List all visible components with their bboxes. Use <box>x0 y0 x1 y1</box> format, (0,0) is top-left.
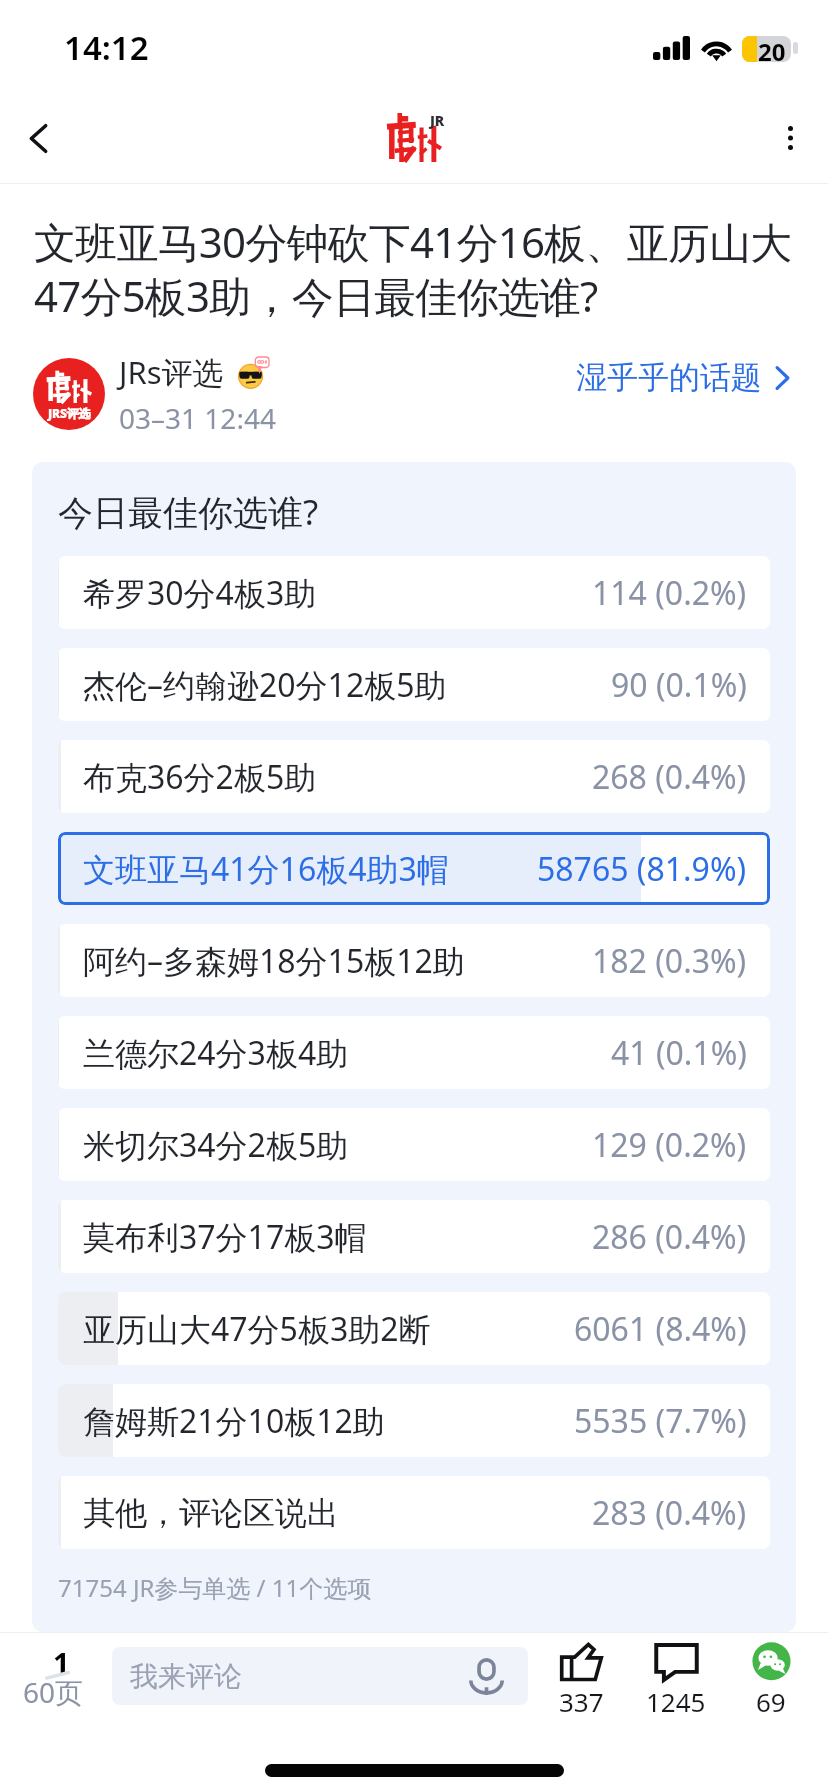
staticText: 米切尔34分2板5助 <box>83 1123 349 1167</box>
staticText: 1 <box>53 1643 70 1682</box>
button[interactable]: 兰德尔24分3板4助 <box>58 1016 770 1089</box>
button[interactable]: 杰伦–约翰逊20分12板5助 <box>58 648 770 721</box>
staticText: 20 <box>758 35 786 61</box>
staticText: 莫布利37分17板3帽 <box>83 1215 367 1259</box>
staticText: 1245 <box>646 1684 706 1719</box>
button[interactable]: 文班亚马41分16板4助3帽 <box>58 832 770 905</box>
staticText: 今日最佳你选谁? <box>58 488 319 536</box>
staticText: 58765 (81.9%) <box>537 847 747 891</box>
staticText: 14:12 <box>64 25 149 70</box>
button[interactable]: 詹姆斯21分10板12助 <box>58 1384 770 1457</box>
staticText: 286 (0.4%) <box>592 1215 747 1259</box>
staticText: 杰伦–约翰逊20分12板5助 <box>83 663 447 707</box>
button[interactable]: 布克36分2板5助 <box>58 740 770 813</box>
button[interactable]: Share to WeChat <box>725 1643 817 1719</box>
staticText: 6061 (8.4%) <box>574 1307 747 1351</box>
staticText: 文班亚马30分钟砍下41分16板、亚历山大47分5板3助，今日最佳你选谁? <box>34 213 796 324</box>
staticText: 283 (0.4%) <box>592 1491 747 1535</box>
button[interactable]: Comments <box>630 1643 722 1719</box>
button[interactable]: 希罗30分4板3助 <box>58 556 770 629</box>
button[interactable]: Like <box>535 1643 627 1719</box>
staticText: 亚历山大47分5板3助2断 <box>83 1307 431 1351</box>
staticText: 129 (0.2%) <box>592 1123 747 1167</box>
button[interactable]: 1 <box>13 1641 97 1711</box>
staticText: 69 <box>756 1684 786 1719</box>
button[interactable]: 湿乎乎的话题 <box>576 358 790 397</box>
staticText: 114 (0.2%) <box>592 571 747 615</box>
button[interactable]: 阿约–多森姆18分15板12助 <box>58 924 770 997</box>
button[interactable]: 我来评论 <box>112 1647 528 1705</box>
staticText: 41 (0.1%) <box>611 1031 747 1075</box>
staticText: 阿约–多森姆18分15板12助 <box>83 939 465 983</box>
staticText: JR <box>430 111 444 130</box>
staticText: 268 (0.4%) <box>592 755 747 799</box>
staticText: 182 (0.3%) <box>592 939 747 983</box>
staticText: 337 <box>559 1684 604 1719</box>
button[interactable]: 其他，评论区说出 <box>58 1476 770 1549</box>
other: Voice input <box>469 1658 504 1695</box>
staticText: 詹姆斯21分10板12助 <box>83 1399 385 1443</box>
staticText: 兰德尔24分3板4助 <box>83 1031 349 1075</box>
staticText: 5535 (7.7%) <box>574 1399 747 1443</box>
button[interactable]: More options <box>760 108 820 168</box>
staticText: 其他，评论区说出 <box>83 1493 339 1533</box>
staticText: 03–31 12:44 <box>119 399 276 437</box>
staticText: 文班亚马41分16板4助3帽 <box>83 847 449 891</box>
staticText: JRs评选 <box>119 351 224 393</box>
staticText: 布克36分2板5助 <box>83 755 317 799</box>
staticText: 希罗30分4板3助 <box>83 571 317 615</box>
button[interactable]: 莫布利37分17板3帽 <box>58 1200 770 1273</box>
staticText: 60页 <box>23 1673 84 1711</box>
staticText: JRS评选 <box>48 405 91 421</box>
staticText: 我来评论 <box>130 1659 242 1694</box>
button[interactable]: 米切尔34分2板5助 <box>58 1108 770 1181</box>
button[interactable]: Back <box>8 108 68 168</box>
staticText: 90 (0.1%) <box>611 663 747 707</box>
staticText: 71754 JR参与单选 / 11个选项 <box>58 1571 372 1604</box>
staticText: 湿乎乎的话题 <box>576 358 762 397</box>
button[interactable]: 亚历山大47分5板3助2断 <box>58 1292 770 1365</box>
